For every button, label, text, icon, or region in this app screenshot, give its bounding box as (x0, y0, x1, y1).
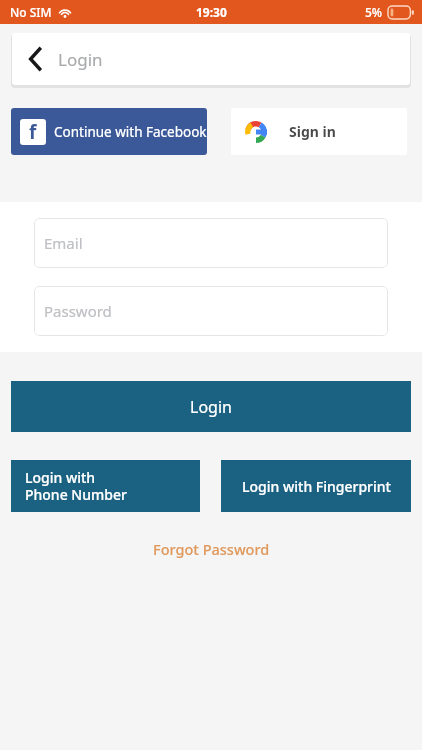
button[interactable]: Login with Phone Number (11, 460, 200, 512)
staticText: Login with Phone Number (25, 468, 127, 504)
button[interactable]: Password (34, 286, 388, 336)
button[interactable]: Sign in (231, 108, 407, 155)
button[interactable]: Login (11, 381, 411, 432)
staticText: Continue with Facebook (54, 123, 207, 141)
button[interactable]: Forgot Password (143, 533, 280, 565)
staticText: 19:30 (196, 4, 227, 20)
staticText: Login (190, 396, 232, 418)
staticText: Login (58, 48, 103, 71)
staticText: Email (44, 233, 83, 253)
button[interactable]: Email (34, 218, 388, 268)
staticText: Password (44, 301, 112, 321)
staticText: f (29, 119, 37, 145)
staticText: Login with Fingerprint (242, 477, 391, 496)
button[interactable]: Back (12, 33, 58, 85)
staticText: No SIM (10, 4, 52, 20)
button[interactable]: f (11, 108, 207, 155)
staticText: 5% (365, 4, 383, 20)
staticText: Forgot Password (153, 539, 270, 559)
button[interactable]: Login with Fingerprint (221, 460, 411, 512)
staticText: Sign in (289, 122, 336, 141)
